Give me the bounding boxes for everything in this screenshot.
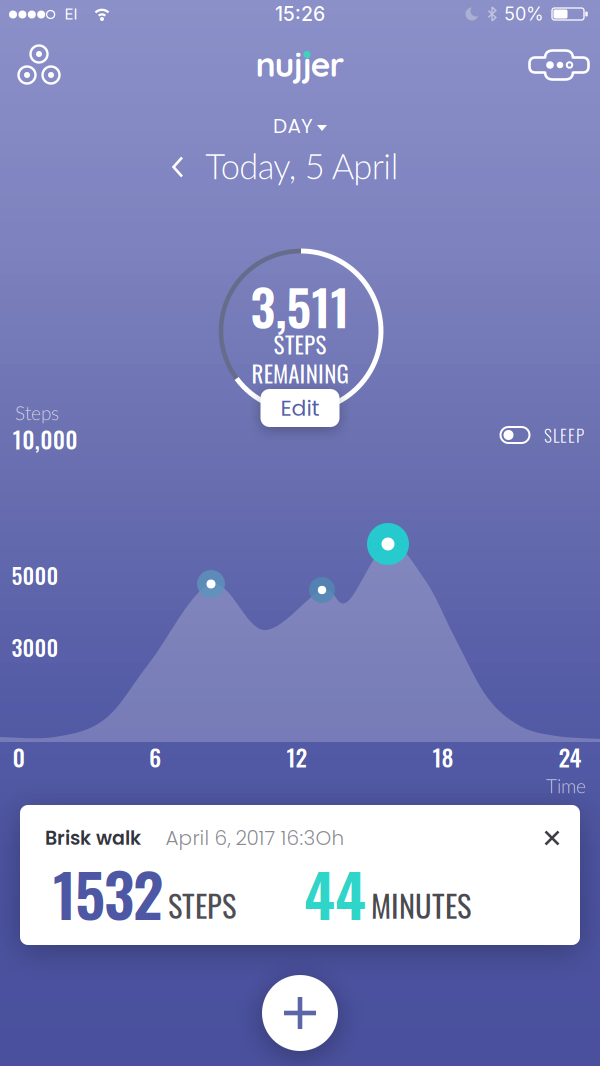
- staticText: STEPS: [273, 327, 326, 361]
- staticText: 12: [286, 740, 307, 774]
- staticText: REMAINING: [251, 356, 348, 390]
- staticText: 50%: [504, 3, 544, 25]
- staticText: STEPS: [168, 882, 236, 928]
- staticText: Edit: [280, 393, 319, 423]
- button[interactable]: Add activity: [262, 975, 338, 1051]
- staticText: 10,000: [13, 422, 77, 456]
- staticText: Today, 5 April: [205, 145, 399, 187]
- staticText: 0: [12, 740, 25, 774]
- button[interactable]: Dismiss: [544, 830, 559, 845]
- staticText: 44: [304, 848, 366, 937]
- button[interactable]: Previous day: [172, 156, 184, 178]
- staticText: EI: [64, 5, 77, 23]
- staticText: 3000: [11, 631, 58, 663]
- staticText: 3,511: [250, 270, 349, 342]
- staticText: Steps: [15, 402, 59, 424]
- staticText: Brisk walk: [45, 825, 141, 851]
- staticText: 6: [149, 740, 161, 774]
- staticText: nujjer: [255, 43, 344, 85]
- staticText: 18: [432, 740, 453, 774]
- button[interactable]: Sleep mode: [500, 426, 590, 444]
- staticText: Time: [546, 775, 586, 797]
- staticText: 5000: [11, 559, 58, 591]
- button[interactable]: DAY: [271, 112, 331, 140]
- staticText: SLEEP: [544, 422, 584, 448]
- staticText: April 6, 2017 16:3Oh: [165, 824, 344, 852]
- button[interactable]: Device: [529, 49, 589, 81]
- staticText: 24: [558, 740, 581, 774]
- staticText: 15:26: [275, 2, 325, 26]
- staticText: DAY: [273, 112, 313, 140]
- button[interactable]: Edit: [260, 388, 340, 428]
- staticText: MINUTES: [371, 882, 471, 928]
- button[interactable]: Menu: [15, 39, 63, 91]
- staticText: 1532: [53, 848, 163, 937]
